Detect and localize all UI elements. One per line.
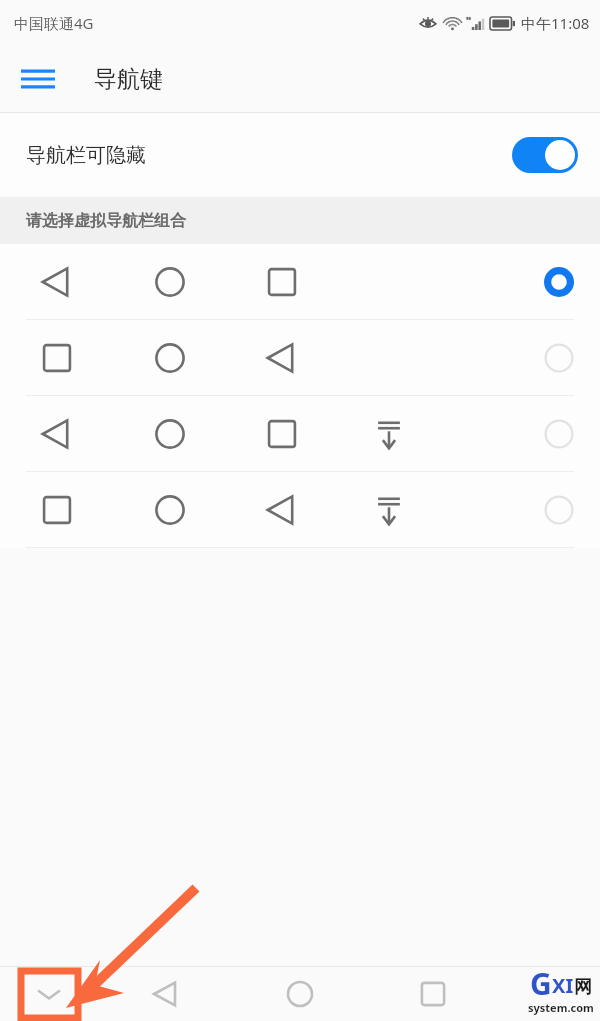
button[interactable]: Navigation key combination option	[0, 244, 600, 319]
button[interactable]: Navigation key combination option	[0, 396, 600, 471]
button[interactable]: Navigation key combination option	[0, 472, 600, 547]
staticText: system.com	[528, 1000, 594, 1015]
staticText: XI	[552, 972, 574, 999]
staticText: 中国联通4G	[14, 13, 94, 33]
staticText: G	[530, 963, 552, 1004]
staticText: 网	[574, 976, 592, 999]
button[interactable]: Home	[277, 971, 323, 1017]
staticText: 导航栏可隐藏	[26, 143, 146, 168]
button[interactable]: Hide navigation bar	[26, 971, 72, 1017]
button[interactable]: Menu	[14, 55, 62, 103]
staticText: 导航键	[94, 65, 163, 94]
staticText: 请选择虚拟导航栏组合	[26, 211, 186, 231]
button[interactable]: Navigation key combination option	[0, 320, 600, 395]
staticText: 中午11:08	[521, 13, 590, 33]
button[interactable]: Navigation bar hideable toggle	[512, 137, 578, 173]
button[interactable]: 导航栏可隐藏	[0, 113, 600, 197]
button[interactable]: Back	[143, 971, 189, 1017]
button[interactable]: Recents	[410, 971, 456, 1017]
